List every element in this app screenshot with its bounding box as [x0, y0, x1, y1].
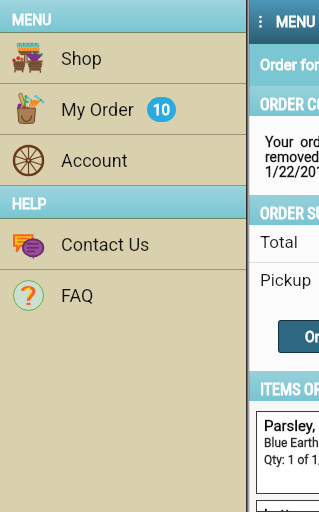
staticText: Account: [61, 150, 128, 171]
staticText: Blue Earth Farm: [264, 436, 319, 450]
staticText: Contact Us: [61, 234, 150, 255]
staticText: Order Again: [305, 329, 319, 345]
staticText: FAQ: [61, 285, 94, 306]
button[interactable]: Pickup: [249, 263, 319, 320]
staticText: Qty: 1 of 1/2 lb: [264, 453, 319, 467]
staticText: Lettuce, Romaine: [264, 506, 319, 512]
staticText: MENU: [276, 14, 316, 30]
staticText: MENU: [12, 12, 52, 28]
button[interactable]: Total: [249, 225, 319, 263]
staticText: Pickup: [260, 270, 312, 290]
button[interactable]: Parsley, Italian: [256, 411, 319, 494]
staticText: Total: [260, 232, 298, 252]
button[interactable]: Order Again: [278, 320, 319, 353]
button[interactable]: Contact Us: [0, 219, 246, 270]
button[interactable]: Open navigation menu: [249, 0, 319, 44]
staticText: 10: [153, 101, 170, 119]
button[interactable]: My Order: [0, 84, 246, 135]
button[interactable]: Account: [0, 135, 246, 186]
button[interactable]: Shop: [0, 33, 246, 84]
staticText: Shop: [61, 48, 102, 69]
staticText: HELP: [12, 196, 47, 212]
staticText: Parsley, Italian: [264, 417, 319, 435]
staticText: ITEMS ORDERED: [260, 380, 319, 399]
staticText: My Order: [61, 99, 134, 120]
staticText: ORDER SUMMARY: [260, 204, 319, 223]
staticText: Your order can be changed or removed unt…: [265, 134, 319, 181]
button[interactable]: FAQ: [0, 270, 246, 321]
staticText: ORDER CONFIRMED: [260, 95, 319, 114]
staticText: Order for Jan 22: [260, 56, 319, 74]
button[interactable]: Lettuce, Romaine: [256, 500, 319, 512]
